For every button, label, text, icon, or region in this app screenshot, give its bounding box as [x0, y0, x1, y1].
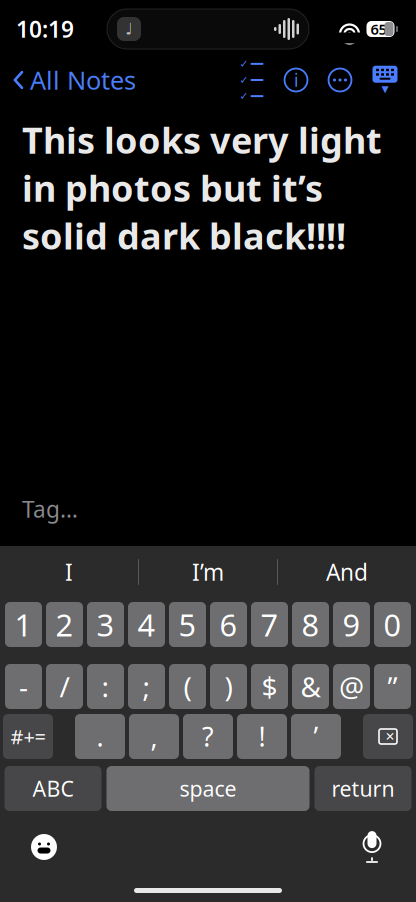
- button[interactable]: Emoji: [19, 825, 69, 869]
- button[interactable]: Hide Keyboard: [362, 62, 408, 98]
- button[interactable]: 7: [251, 602, 288, 647]
- staticText: space: [179, 774, 236, 803]
- staticText: ?: [202, 719, 214, 754]
- staticText: 7: [260, 604, 278, 645]
- button[interactable]: $: [251, 664, 288, 709]
- button[interactable]: space: [106, 766, 309, 811]
- button[interactable]: Delete: [363, 714, 413, 759]
- staticText: And: [326, 557, 368, 587]
- staticText: ”: [387, 668, 397, 705]
- button[interactable]: 4: [128, 602, 165, 647]
- button[interactable]: Checklist: [230, 62, 274, 98]
- staticText: 1: [14, 604, 32, 645]
- staticText: -: [19, 668, 28, 705]
- button[interactable]: ABC: [4, 766, 101, 811]
- staticText: I: [65, 557, 73, 587]
- button[interactable]: -: [5, 664, 42, 709]
- button[interactable]: @: [333, 664, 370, 709]
- staticText: 10:19: [16, 14, 74, 44]
- button[interactable]: More: [318, 62, 362, 98]
- staticText: $: [261, 668, 277, 705]
- staticText: /: [59, 668, 69, 705]
- staticText: Tag…: [22, 494, 78, 524]
- button[interactable]: 0: [374, 602, 411, 647]
- button[interactable]: 1: [5, 602, 42, 647]
- button[interactable]: .: [75, 714, 125, 759]
- staticText: ;: [142, 668, 150, 705]
- staticText: 5: [178, 604, 196, 645]
- button[interactable]: 2: [46, 602, 83, 647]
- button[interactable]: &: [292, 664, 329, 709]
- staticText: 0: [383, 604, 401, 645]
- button[interactable]: !: [237, 714, 287, 759]
- staticText: ✕: [385, 730, 395, 743]
- button[interactable]: 8: [292, 602, 329, 647]
- staticText: This looks very light in photos but it’s…: [22, 116, 382, 259]
- staticText: 6: [219, 604, 237, 645]
- button[interactable]: Dictate: [347, 825, 397, 869]
- button[interactable]: All Notes: [0, 55, 136, 105]
- staticText: 3: [96, 604, 114, 645]
- button[interactable]: :: [87, 664, 124, 709]
- staticText: &: [300, 668, 320, 705]
- button[interactable]: 5: [169, 602, 206, 647]
- button[interactable]: ): [210, 664, 247, 709]
- staticText: .: [96, 719, 103, 754]
- button[interactable]: ;: [128, 664, 165, 709]
- button[interactable]: /: [46, 664, 83, 709]
- staticText: ): [224, 668, 232, 705]
- button[interactable]: And: [278, 546, 416, 598]
- staticText: ✓: [239, 58, 248, 70]
- button[interactable]: ?: [183, 714, 233, 759]
- staticText: :: [101, 668, 109, 705]
- staticText: ’: [313, 719, 318, 754]
- button[interactable]: Tag…: [0, 494, 416, 546]
- staticText: 9: [342, 604, 360, 645]
- button[interactable]: ”: [374, 664, 411, 709]
- button[interactable]: I’m: [139, 546, 277, 598]
- button[interactable]: #+=: [3, 714, 53, 759]
- staticText: return: [331, 774, 394, 803]
- button[interactable]: 6: [210, 602, 247, 647]
- staticText: 65: [370, 19, 386, 39]
- staticText: 2: [55, 604, 73, 645]
- button[interactable]: 3: [87, 602, 124, 647]
- button[interactable]: ,: [129, 714, 179, 759]
- button[interactable]: (: [169, 664, 206, 709]
- button[interactable]: 9: [333, 602, 370, 647]
- staticText: ▼: [381, 84, 388, 94]
- staticText: @: [339, 668, 364, 705]
- staticText: 8: [301, 604, 319, 645]
- staticText: #+=: [10, 723, 45, 750]
- button[interactable]: I: [0, 546, 138, 598]
- staticText: 4: [137, 604, 155, 645]
- button[interactable]: return: [314, 766, 411, 811]
- staticText: (: [183, 668, 191, 705]
- button[interactable]: ’: [291, 714, 341, 759]
- staticText: !: [258, 719, 265, 754]
- staticText: ♩: [125, 20, 133, 38]
- staticText: I’m: [192, 557, 224, 587]
- staticText: ,: [150, 719, 157, 754]
- staticText: i: [294, 68, 298, 91]
- staticText: All Notes: [30, 63, 136, 97]
- staticText: ✓: [239, 90, 248, 102]
- staticText: ✓: [239, 74, 248, 86]
- button[interactable]: Info: [274, 62, 318, 98]
- staticText: ABC: [32, 774, 73, 803]
